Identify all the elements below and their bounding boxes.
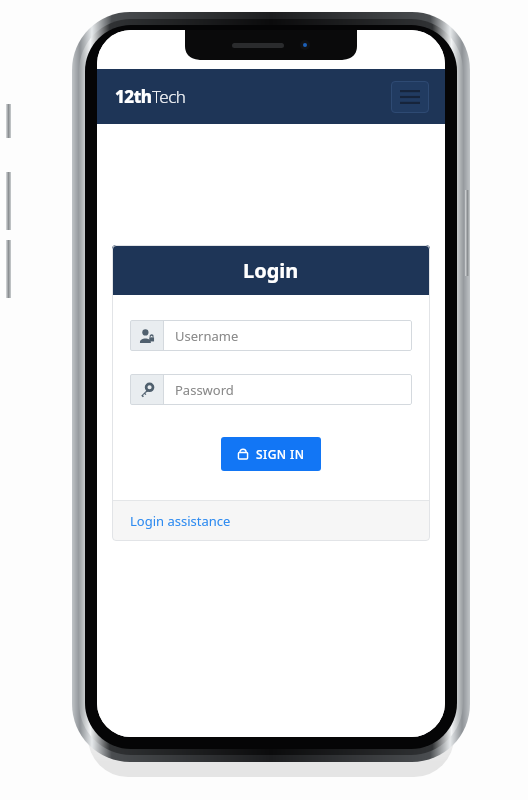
- staticText: Login assistance: [130, 512, 231, 530]
- button[interactable]: Login assistance: [130, 512, 231, 530]
- button[interactable]: SIGN IN: [221, 437, 321, 471]
- button[interactable]: Password: [130, 374, 412, 405]
- staticText: Username: [175, 327, 239, 345]
- staticText: Tech: [152, 85, 186, 108]
- staticText: Login: [243, 257, 299, 284]
- staticText: SIGN IN: [256, 446, 305, 462]
- button[interactable]: 12th: [115, 85, 186, 108]
- staticText: 12th: [115, 85, 152, 108]
- staticText: Password: [175, 381, 234, 399]
- button[interactable]: Username: [130, 320, 412, 351]
- button[interactable]: Open navigation menu: [391, 81, 429, 113]
